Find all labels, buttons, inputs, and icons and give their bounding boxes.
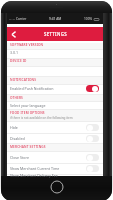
staticText: Disabled xyxy=(10,136,25,141)
staticText: Carrier xyxy=(16,17,27,21)
button[interactable]: Back xyxy=(7,28,20,41)
staticText: Enabled Push Notification xyxy=(10,86,54,91)
button[interactable] xyxy=(7,83,103,94)
staticText: Show Merchant Delivery Fee xyxy=(10,173,58,178)
staticText: SETTINGS xyxy=(44,31,67,37)
staticText: DEVICE ID xyxy=(10,59,27,63)
button[interactable]: Switch off xyxy=(86,154,99,161)
button[interactable] xyxy=(7,122,103,133)
staticText: 9:41 AM xyxy=(49,17,62,21)
staticText: 100% xyxy=(84,17,93,21)
staticText: 3.0.1 xyxy=(10,50,19,55)
staticText: if there is not available on the followi… xyxy=(10,116,73,120)
button[interactable] xyxy=(7,163,103,174)
button[interactable] xyxy=(7,48,103,56)
staticText: OTHERS xyxy=(10,96,23,100)
staticText: MERCHANT SETTINGS xyxy=(10,145,46,149)
staticText: SOFTWARE VERSION xyxy=(10,43,44,47)
button[interactable]: Switch off xyxy=(86,135,99,142)
staticText: Select your language xyxy=(10,103,46,108)
staticText: NOTIFICATIONS xyxy=(10,78,37,82)
button[interactable] xyxy=(7,101,103,109)
button[interactable] xyxy=(7,133,103,144)
staticText: Show Merchant Current Time xyxy=(10,166,60,171)
staticText: Close Store xyxy=(10,155,29,160)
button[interactable]: Switch off xyxy=(86,124,99,131)
button[interactable] xyxy=(7,152,103,163)
staticText: FOOD ITEM OPTIONS xyxy=(10,111,45,115)
button[interactable]: Switch on xyxy=(86,85,99,92)
button[interactable]: Switch off xyxy=(86,165,99,172)
staticText: Hide xyxy=(10,125,18,130)
